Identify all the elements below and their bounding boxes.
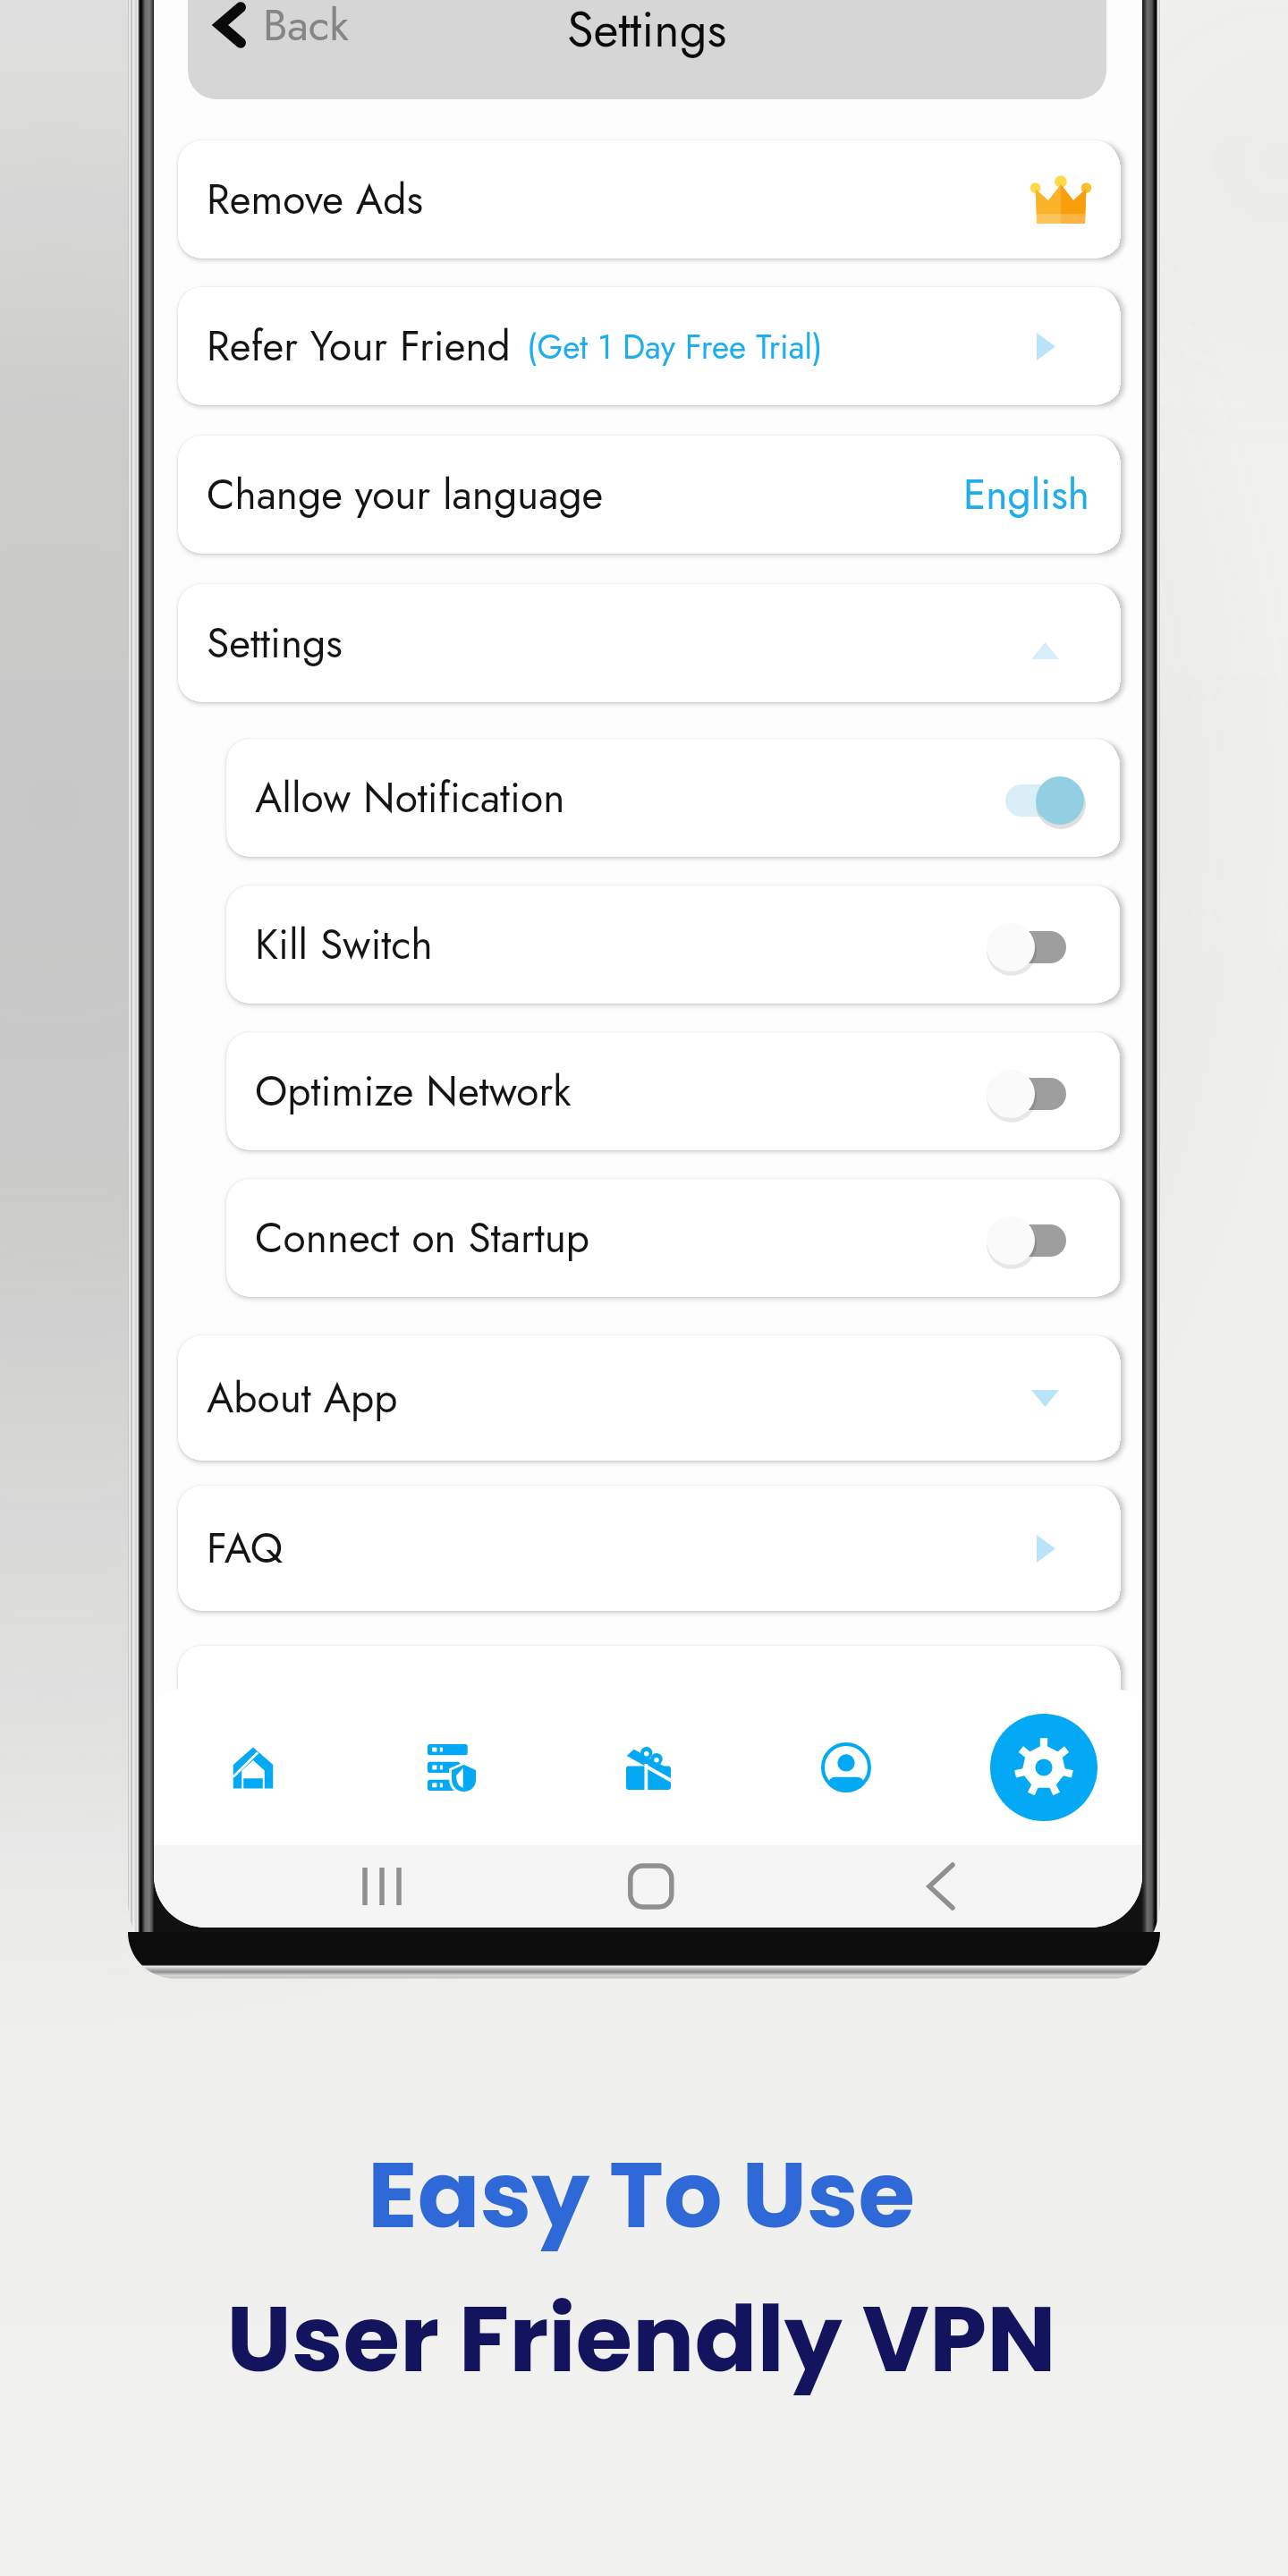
button[interactable]: Account: [747, 1690, 945, 1845]
button[interactable]: Servers: [352, 1690, 549, 1845]
button[interactable]: Rewards: [549, 1690, 747, 1845]
staticText: (Get 1 Day Free Trial): [527, 323, 823, 370]
staticText: Easy To Use: [368, 2131, 915, 2259]
button[interactable]: FAQ: [178, 1486, 1119, 1611]
staticText: Change your language: [207, 465, 604, 524]
staticText: Kill Switch: [255, 915, 433, 974]
button[interactable]: About App: [178, 1335, 1119, 1461]
button[interactable]: Remove Ads: [178, 140, 1119, 258]
button[interactable]: Connect on Startup: [226, 1179, 1119, 1297]
button[interactable]: Back: [213, 0, 349, 57]
button[interactable]: Kill Switch: [226, 885, 1119, 1004]
staticText: Allow Notification: [255, 768, 565, 827]
staticText: Connect on Startup: [255, 1208, 590, 1267]
button[interactable]: Refer Your Friend: [178, 287, 1119, 405]
button[interactable]: Back: [188, 0, 1106, 99]
button[interactable]: Optimize Network: [226, 1032, 1119, 1150]
staticText: Remove Ads: [207, 170, 423, 229]
button[interactable]: Settings: [178, 584, 1119, 702]
staticText: Optimize Network: [255, 1062, 572, 1121]
button[interactable]: Home: [154, 1690, 352, 1845]
staticText: Settings: [207, 614, 343, 673]
button[interactable]: Change your language: [178, 436, 1119, 554]
staticText: English: [963, 465, 1089, 524]
button[interactable]: Allow Notification: [226, 739, 1119, 857]
staticText: Refer Your Friend: [207, 317, 511, 376]
staticText: About App: [207, 1368, 398, 1428]
staticText: FAQ: [207, 1519, 284, 1578]
staticText: Settings: [567, 0, 727, 64]
staticText: Back: [263, 0, 349, 57]
button[interactable]: Contact Us: [178, 1646, 1119, 1771]
staticText: User Friendly VPN: [226, 2275, 1056, 2403]
button[interactable]: Settings: [945, 1690, 1142, 1845]
